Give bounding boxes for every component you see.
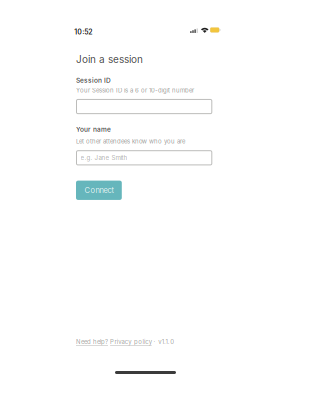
staticText: Connect [84,186,113,195]
staticText: Let other attendees know who you are [76,138,185,145]
button[interactable]: Privacy policy [108,338,152,345]
staticText: Your name [76,125,111,133]
staticText: Join a session [76,53,143,65]
button[interactable]: Need help? [76,338,108,345]
staticText: Need help? [76,338,108,345]
staticText: Session ID [76,76,111,84]
button[interactable]: Connect [76,181,122,200]
staticText: Privacy policy [110,338,152,345]
staticText: · v1.1.0 [153,338,174,345]
staticText: 10:52 [74,28,92,36]
staticText: e.g. Jane Smith [80,154,127,161]
button[interactable]: Session ID [76,99,212,114]
button[interactable]: Your name [76,150,212,165]
staticText: Your Session ID is a 6 or 10-digit numbe… [76,87,194,94]
